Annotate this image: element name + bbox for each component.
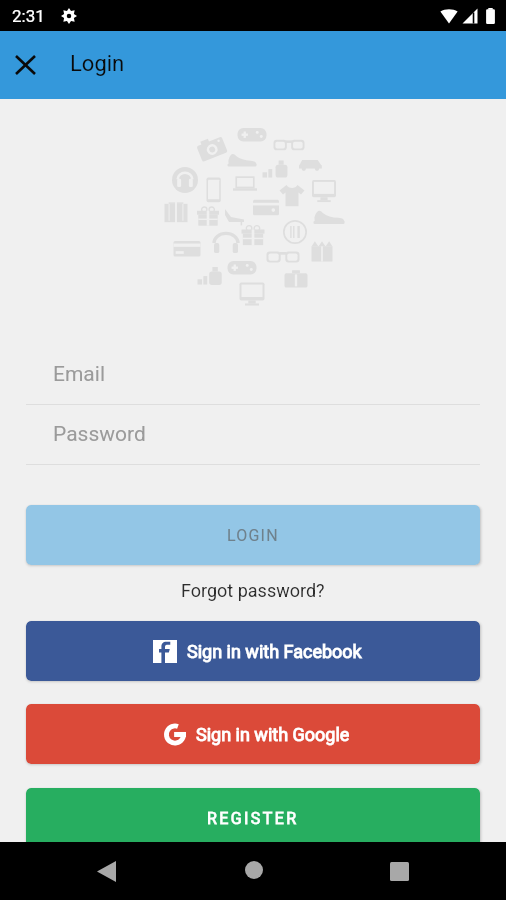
staticText: 2:31 [12,6,45,26]
button[interactable]: LOGIN [26,505,480,565]
staticText: Password [53,422,146,447]
button[interactable]: Back [82,847,130,895]
button[interactable]: Home [230,846,278,894]
staticText: Email [53,362,105,387]
button[interactable]: REGISTER [26,788,480,848]
button[interactable]: Forgot password? [173,578,333,603]
staticText: Sign in with Google [196,724,350,745]
button[interactable]: Email [26,352,480,405]
staticText: Login [70,51,125,77]
staticText: Sign in with Facebook [187,641,362,662]
button[interactable]: Sign in with Google [26,704,480,764]
button[interactable]: Password [26,412,480,465]
button[interactable]: Recents [375,847,423,895]
staticText: LOGIN [227,526,279,545]
staticText: Forgot password? [181,580,325,601]
staticText: REGISTER [207,809,299,828]
button[interactable]: Sign in with Facebook [26,621,480,681]
button[interactable]: Close [0,40,50,90]
